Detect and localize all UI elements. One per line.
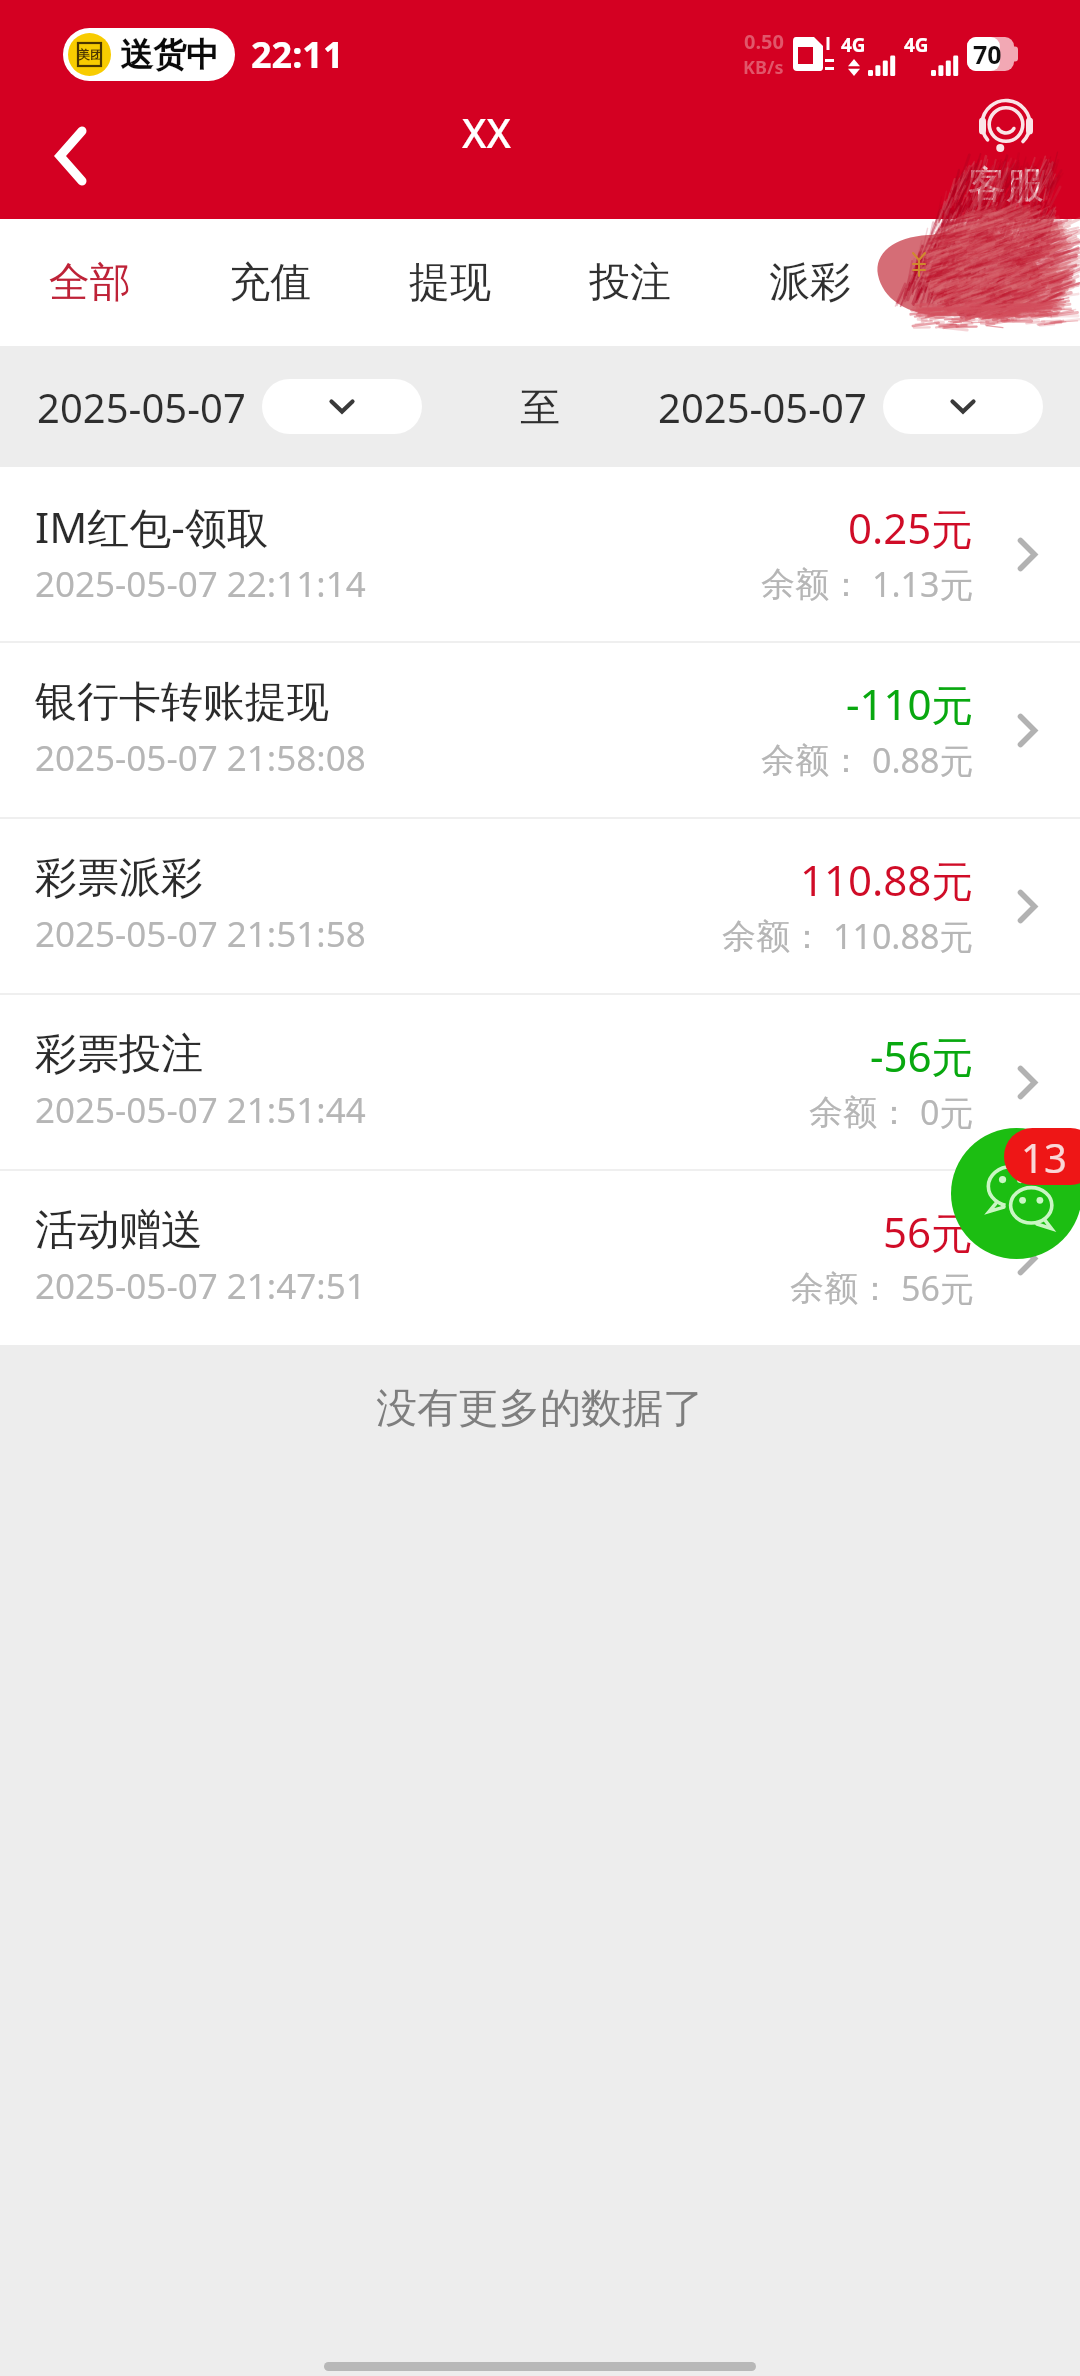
button[interactable]: 投注	[540, 219, 720, 346]
staticText: 2025-05-07 21:51:58	[35, 910, 366, 958]
staticText: 余额：	[790, 1267, 892, 1310]
button[interactable]: Select start date	[262, 379, 422, 434]
staticText: 2025-05-07 21:51:44	[35, 1086, 366, 1134]
button[interactable]: 全部	[0, 219, 180, 346]
staticText: 余额：	[809, 1091, 911, 1134]
button[interactable]: WeChat customer service	[951, 1128, 1080, 1259]
button[interactable]: 派彩	[720, 219, 900, 346]
staticText: 至	[520, 382, 560, 432]
staticText: 0元	[920, 1089, 974, 1135]
button[interactable]: 彩票派彩	[0, 819, 1080, 993]
staticText: 2025-05-07 21:47:51	[35, 1262, 366, 1310]
staticText: 客服	[968, 161, 1044, 209]
staticText: 余额：	[761, 739, 863, 782]
staticText: 2025-05-07 22:11:14	[35, 560, 366, 608]
staticText: 4G	[904, 32, 929, 58]
button[interactable]: 充值	[180, 219, 360, 346]
button[interactable]: 提现	[360, 219, 540, 346]
staticText: 110.88元	[800, 851, 974, 908]
button[interactable]: 银行卡转账提现	[0, 643, 1080, 817]
staticText: 1.13元	[872, 561, 974, 607]
staticText: 0.50	[744, 28, 784, 55]
button[interactable]: 人工	[900, 219, 1080, 346]
staticText: 派彩	[769, 257, 851, 309]
staticText: 2025-05-07	[37, 380, 246, 434]
staticText: 4G	[841, 32, 866, 58]
staticText: 送货中	[120, 34, 219, 76]
button[interactable]: Select end date	[883, 379, 1043, 434]
button[interactable]: 彩票投注	[0, 995, 1080, 1169]
staticText: 充值	[229, 257, 311, 309]
staticText: XX	[462, 105, 511, 159]
staticText: 彩票投注	[35, 1028, 203, 1081]
button[interactable]: 客服	[968, 101, 1044, 209]
staticText: 0.25元	[848, 499, 974, 556]
staticText: 全部	[49, 257, 131, 309]
staticText: 没有更多的数据了	[376, 1383, 704, 1435]
staticText: -56元	[870, 1027, 974, 1084]
staticText: 70	[973, 37, 1002, 71]
staticText: 110.88元	[833, 913, 974, 959]
staticText: 提现	[409, 257, 491, 309]
staticText: 彩票派彩	[35, 852, 203, 905]
staticText: -110元	[846, 675, 974, 732]
staticText: 13	[1021, 1130, 1067, 1184]
staticText: IM红包-领取	[35, 498, 269, 555]
button[interactable]: Back	[16, 101, 126, 211]
staticText: 2025-05-07 21:58:08	[35, 734, 366, 782]
button[interactable]: 活动赠送	[0, 1171, 1080, 1345]
staticText: KB/s	[743, 55, 784, 80]
staticText: 余额：	[761, 563, 863, 606]
staticText: 投注	[589, 257, 671, 309]
staticText: 银行卡转账提现	[35, 676, 329, 729]
staticText: 活动赠送	[35, 1204, 203, 1257]
staticText: 56元	[883, 1203, 974, 1260]
button[interactable]: IM红包-领取	[0, 467, 1080, 641]
staticText: 2025-05-07	[658, 380, 867, 434]
staticText: 22:11	[251, 30, 344, 79]
staticText: 0.88元	[872, 737, 974, 783]
staticText: 美团	[78, 47, 102, 62]
staticText: 余额：	[722, 915, 824, 958]
staticText: 人工	[949, 257, 1031, 309]
staticText: 56元	[901, 1265, 974, 1311]
